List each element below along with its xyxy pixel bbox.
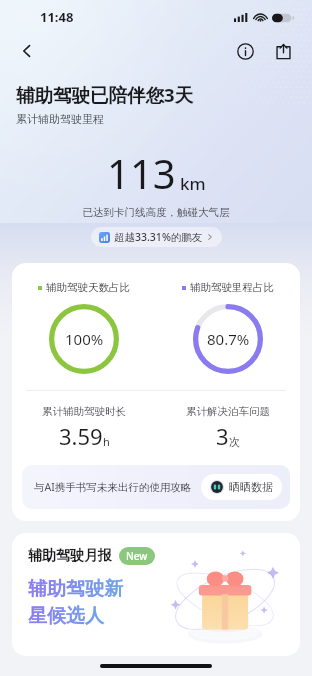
staticText: 11:48 [40,8,74,26]
staticText: 3 [216,421,229,451]
button[interactable]: 晒晒数据 [201,474,282,500]
staticText: 累计辅助驾驶里程 [16,112,104,126]
staticText: 辅助驾驶新 [28,577,123,601]
staticText: 100% [65,329,104,349]
staticText: 辅助驾驶里程占比 [190,281,274,294]
staticText: 80.7% [207,329,250,349]
button[interactable]: 辅助驾驶月报 [12,533,300,656]
staticText: 超越33.31%的鹏友 [114,230,203,244]
staticText: 113 [107,146,176,200]
staticText: 累计解决泊车问题 [186,405,270,418]
staticText: 已达到卡门线高度，触碰大气层 [0,206,312,219]
staticText: 3.59 [59,421,103,451]
staticText: 晒晒数据 [229,480,273,494]
staticText: km [180,172,206,195]
button[interactable]: Info [230,36,260,66]
staticText: 辅助驾驶已陪伴您3天 [16,82,194,107]
staticText: 辅助驾驶月报 [28,547,112,565]
staticText: 辅助驾驶天数占比 [46,281,130,294]
staticText: 次 [229,435,240,449]
button[interactable]: Back [12,36,42,66]
staticText: h [103,434,110,449]
staticText: 累计辅助驾驶时长 [42,405,126,418]
staticText: 与AI携手书写未来出行的使用攻略 [34,480,193,494]
staticText: 星候选人 [28,604,104,628]
button[interactable]: 超越33.31%的鹏友 [91,227,222,247]
button[interactable]: Share [268,36,298,66]
staticText: New [126,549,148,563]
